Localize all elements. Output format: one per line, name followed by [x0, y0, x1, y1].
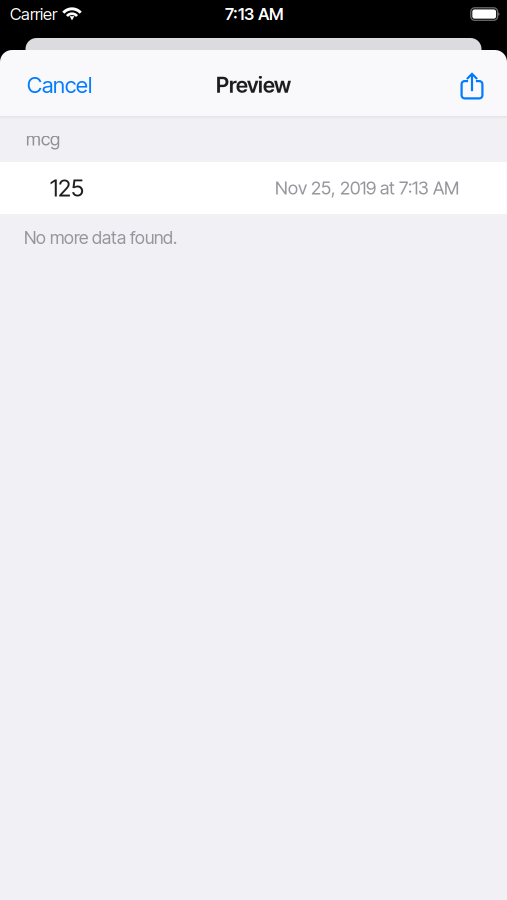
button[interactable]: 125 — [0, 162, 507, 214]
staticText: 7:13 AM — [225, 4, 284, 24]
staticText: 125 — [50, 174, 84, 202]
staticText: Cancel — [27, 72, 92, 98]
staticText: Preview — [216, 72, 291, 98]
button[interactable]: Share — [450, 57, 494, 109]
button[interactable]: Cancel — [17, 57, 102, 109]
staticText: Carrier — [10, 4, 57, 24]
staticText: No more data found. — [24, 227, 177, 248]
staticText: mcg — [26, 128, 60, 150]
staticText: Nov 25, 2019 at 7:13 AM — [275, 177, 459, 199]
